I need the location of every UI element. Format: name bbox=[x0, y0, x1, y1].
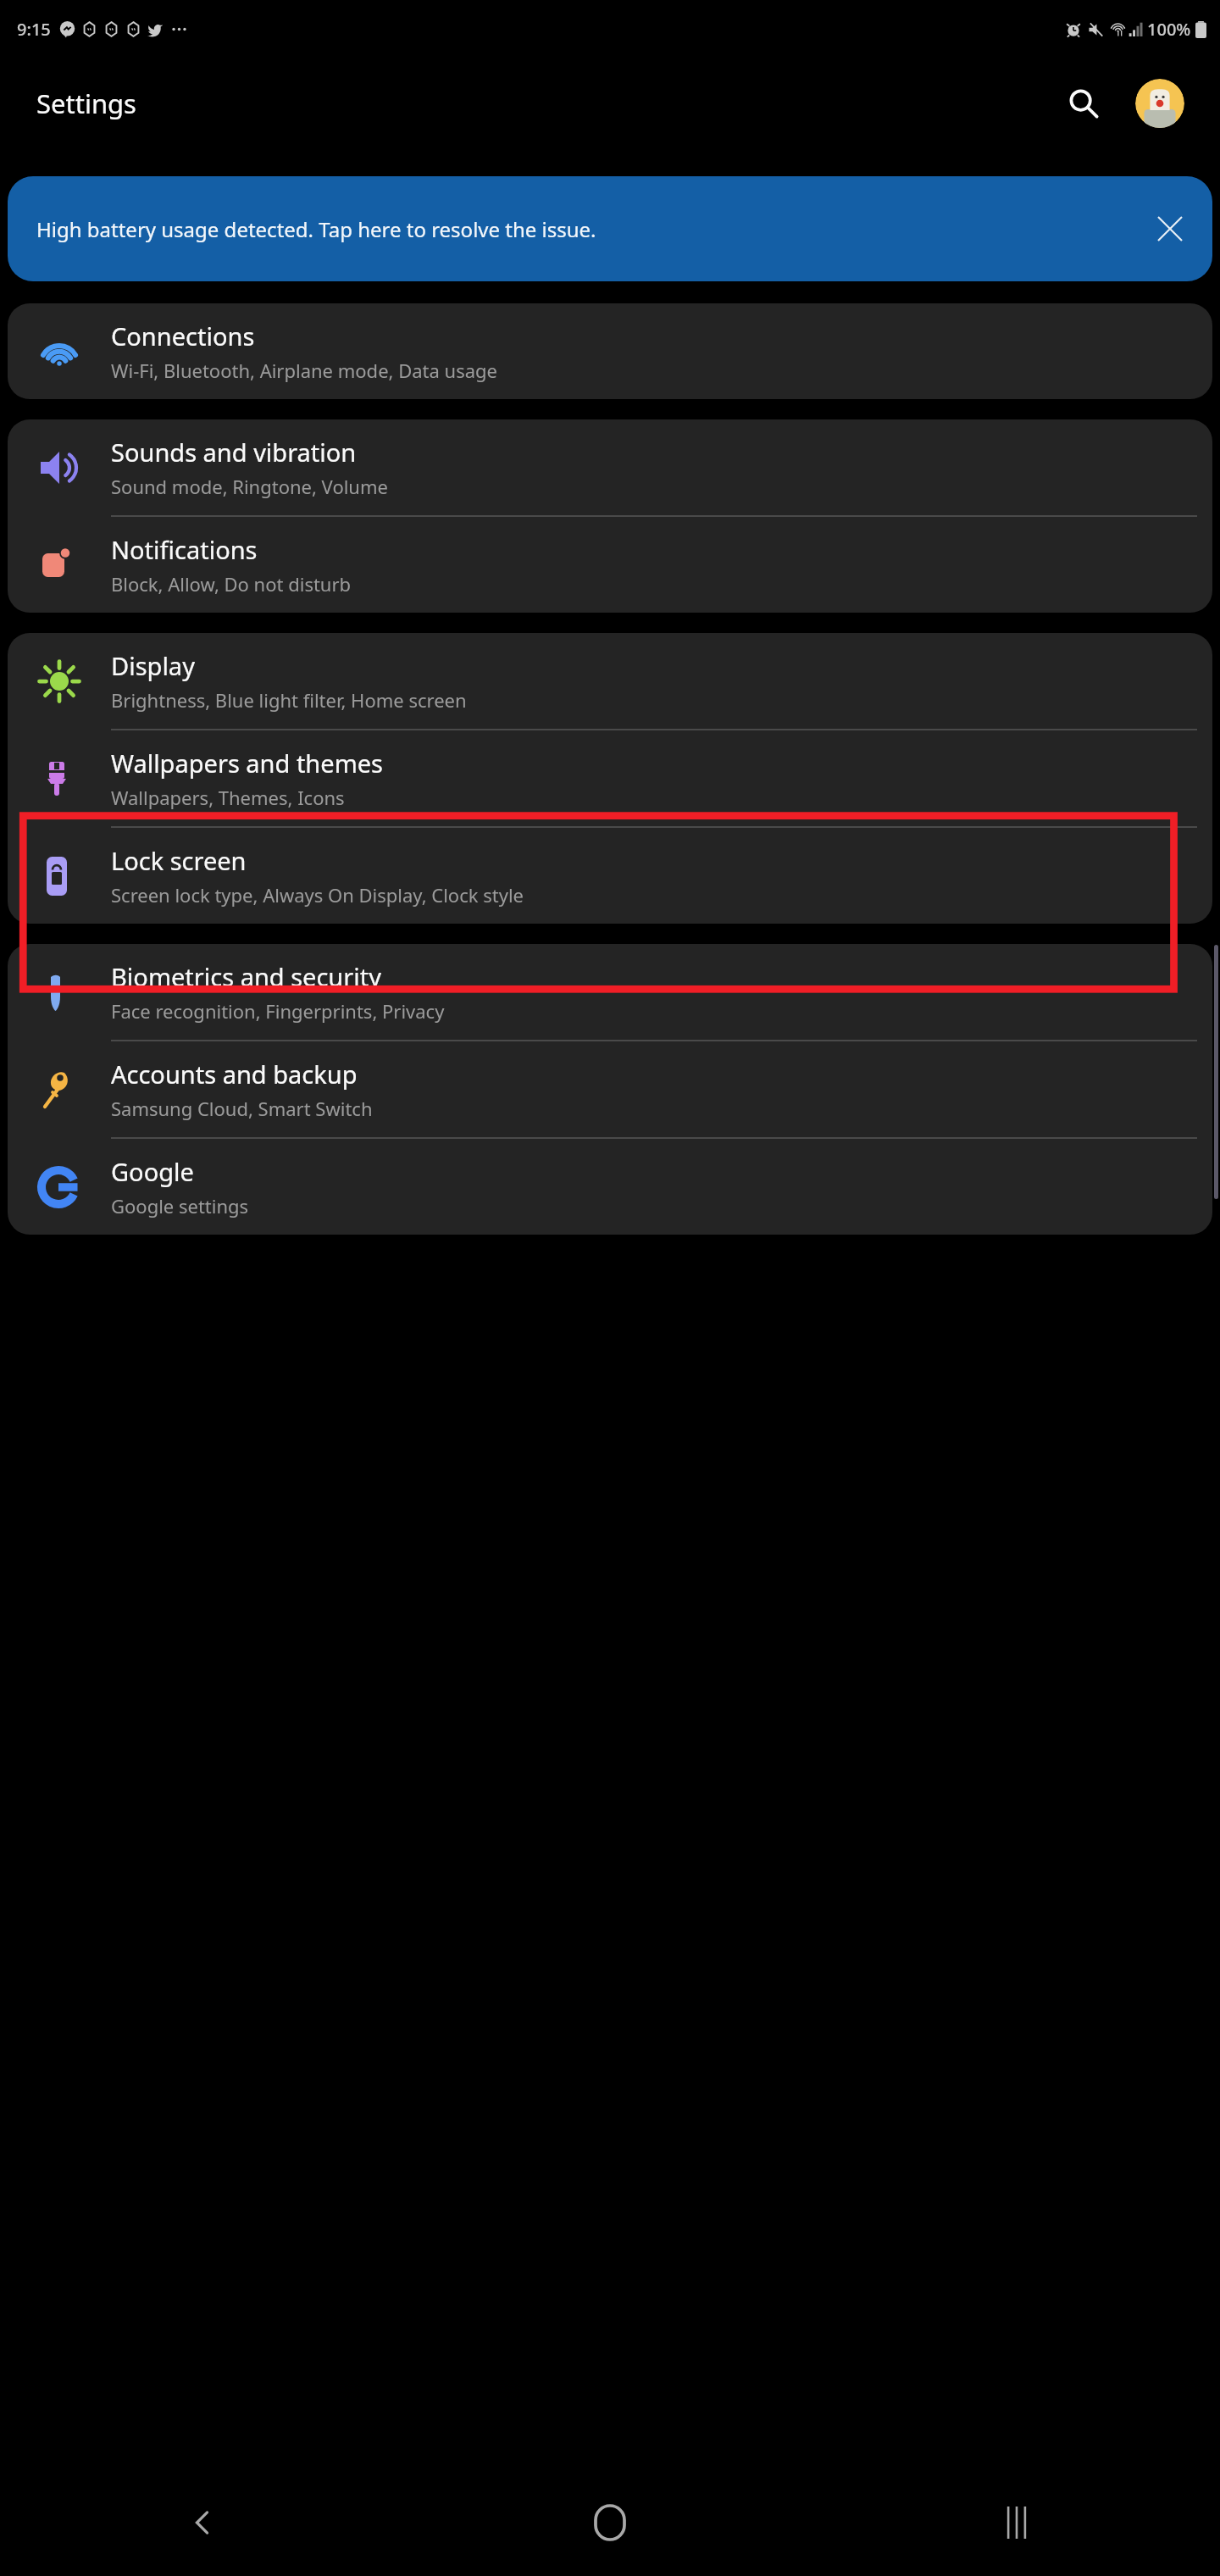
button[interactable]: Connections bbox=[8, 303, 1212, 399]
staticText: Face recognition, Fingerprints, Privacy bbox=[111, 998, 445, 1024]
button[interactable]: Notifications bbox=[8, 517, 1212, 613]
staticText: Block, Allow, Do not disturb bbox=[111, 571, 352, 597]
button[interactable]: Sounds and vibration bbox=[8, 419, 1212, 515]
staticText: Samsung Cloud, Smart Switch bbox=[111, 1096, 373, 1121]
button[interactable]: Dismiss bbox=[1145, 203, 1195, 254]
staticText: Brightness, Blue light filter, Home scre… bbox=[111, 687, 467, 713]
button[interactable]: High battery usage detected. Tap here to… bbox=[8, 176, 1212, 281]
staticText: Settings bbox=[36, 86, 136, 121]
staticText: High battery usage detected. Tap here to… bbox=[36, 215, 596, 243]
staticText: 100% bbox=[1147, 18, 1191, 41]
button[interactable]: Recents bbox=[813, 2469, 1220, 2576]
button[interactable]: Accounts and backup bbox=[8, 1041, 1212, 1137]
button[interactable]: Search bbox=[1051, 70, 1117, 136]
staticText: Sounds and vibration bbox=[111, 436, 357, 469]
staticText: Lock screen bbox=[111, 844, 247, 877]
staticText: Google bbox=[111, 1155, 194, 1188]
button[interactable]: Wallpapers and themes bbox=[8, 730, 1212, 826]
staticText: Display bbox=[111, 649, 195, 682]
staticText: Notifications bbox=[111, 533, 258, 566]
staticText: Accounts and backup bbox=[111, 1058, 358, 1091]
staticText: Screen lock type, Always On Display, Clo… bbox=[111, 882, 524, 908]
staticText: Connections bbox=[111, 319, 255, 353]
staticText: Google settings bbox=[111, 1193, 249, 1219]
staticText: Biometrics and security bbox=[111, 960, 382, 993]
staticText: Wi-Fi, Bluetooth, Airplane mode, Data us… bbox=[111, 358, 497, 383]
button[interactable]: Display bbox=[8, 633, 1212, 729]
staticText: Sound mode, Ringtone, Volume bbox=[111, 474, 388, 499]
staticText: Wallpapers and themes bbox=[111, 747, 384, 780]
button[interactable]: Biometrics and security bbox=[8, 944, 1212, 1040]
staticText: 9:15 bbox=[17, 18, 51, 41]
button[interactable]: Lock screen bbox=[8, 828, 1212, 924]
button[interactable]: Account bbox=[1128, 72, 1191, 135]
staticText: Wallpapers, Themes, Icons bbox=[111, 785, 345, 810]
button[interactable]: Home bbox=[407, 2469, 813, 2576]
button[interactable]: Back bbox=[0, 2469, 407, 2576]
button[interactable]: Google bbox=[8, 1139, 1212, 1235]
